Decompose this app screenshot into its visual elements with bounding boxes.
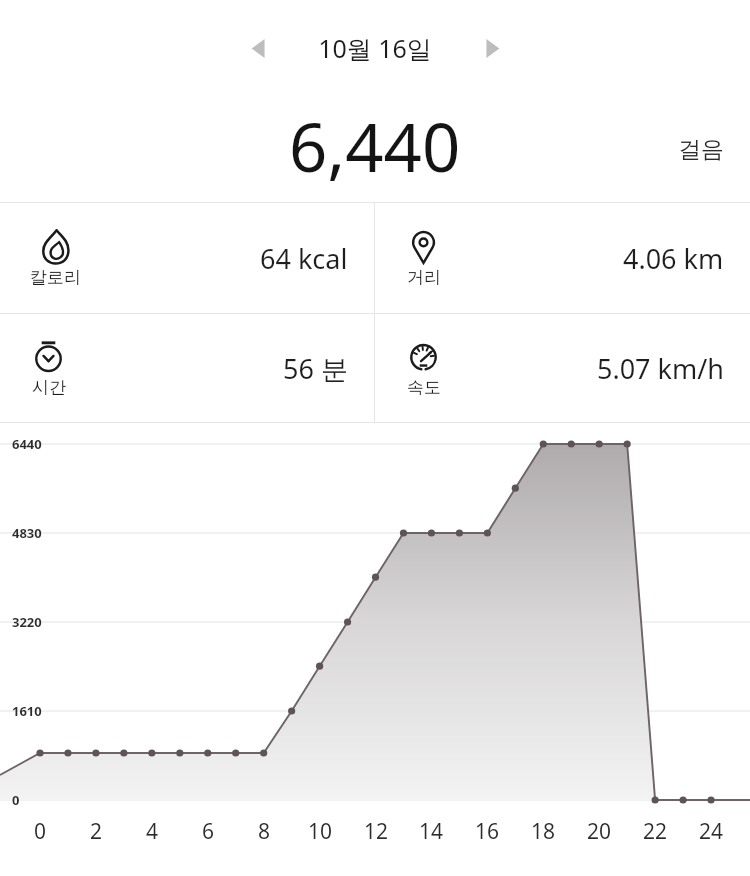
button[interactable]: 속도 (375, 314, 750, 422)
staticText: 칼로리 (30, 267, 81, 288)
button[interactable]: 칼로리 (0, 203, 374, 313)
staticText: 12 (364, 817, 389, 846)
staticText: 5.07 km/h (597, 350, 724, 387)
staticText: 6 (202, 817, 215, 846)
button[interactable]: 거리 (375, 203, 750, 313)
staticText: 4 (146, 817, 159, 846)
staticText: 56 분 (283, 350, 348, 387)
staticText: 4.06 km (623, 240, 724, 277)
staticText: 거리 (407, 267, 441, 288)
staticText: 0 (34, 817, 47, 846)
staticText: 18 (531, 817, 556, 846)
staticText: 8 (258, 817, 271, 846)
staticText: 걸음 (678, 135, 724, 164)
staticText: 0 (12, 791, 20, 809)
staticText: 1610 (12, 702, 42, 720)
staticText: 10 (308, 817, 333, 846)
staticText: 3220 (12, 613, 42, 631)
staticText: 64 kcal (260, 240, 348, 277)
button[interactable]: 시간 (0, 314, 374, 422)
staticText: 6,440 (289, 100, 461, 191)
staticText: 시간 (32, 377, 66, 398)
button[interactable]: 10월 16일 (281, 31, 469, 65)
button[interactable]: Previous day (235, 25, 281, 71)
staticText: 22 (643, 817, 668, 846)
staticText: 16 (475, 817, 500, 846)
staticText: 4830 (12, 524, 42, 542)
staticText: 10월 16일 (318, 31, 432, 65)
staticText: 속도 (407, 377, 441, 398)
staticText: 2 (90, 817, 103, 846)
staticText: 6440 (12, 435, 42, 453)
staticText: 14 (419, 817, 444, 846)
staticText: 20 (587, 817, 612, 846)
staticText: 24 (699, 817, 724, 846)
button[interactable]: Next day (469, 25, 515, 71)
